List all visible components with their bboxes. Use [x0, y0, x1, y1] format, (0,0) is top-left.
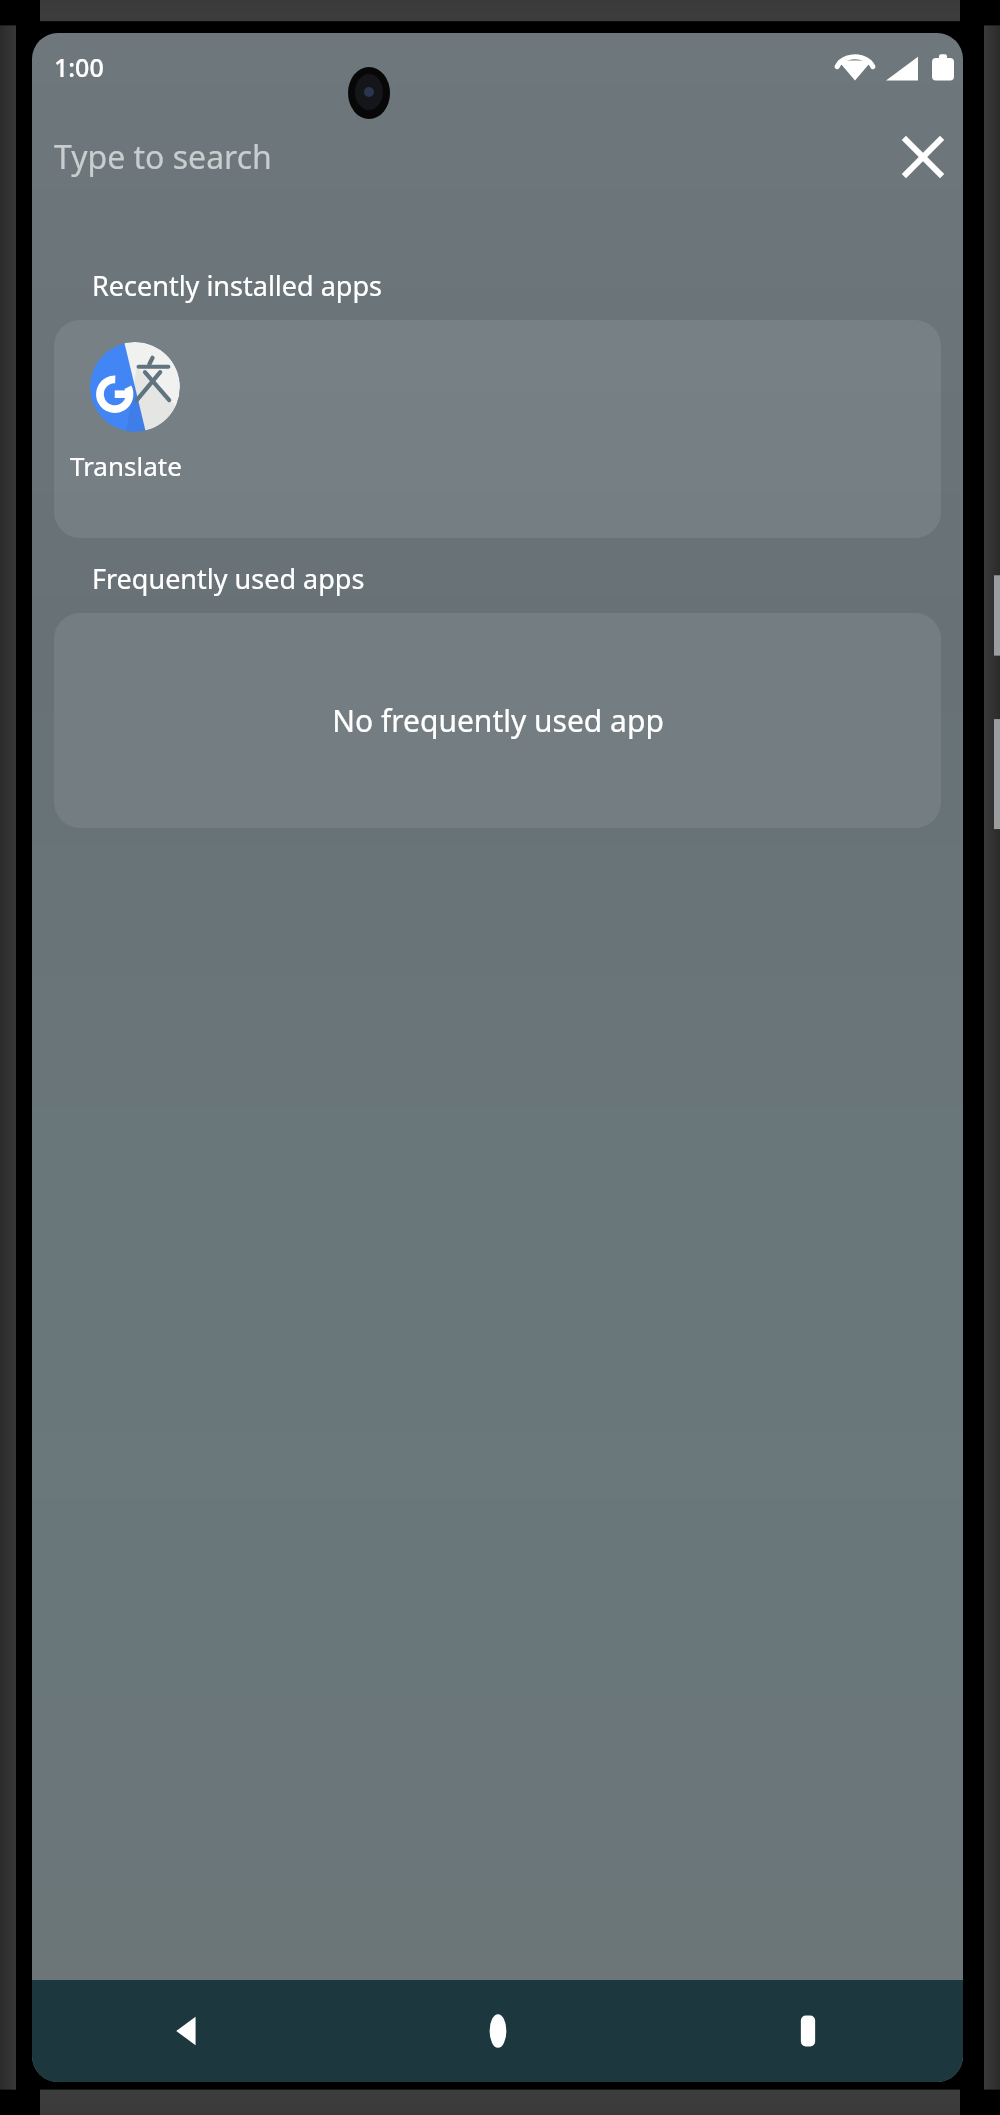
button[interactable]: Translate	[54, 320, 941, 538]
staticText: No frequently used app	[332, 700, 664, 741]
button[interactable]: Type to search	[32, 101, 963, 213]
staticText: 1:00	[54, 50, 104, 84]
button[interactable]: Home	[343, 1980, 653, 2082]
staticText: Translate	[70, 448, 200, 483]
button[interactable]: Recent apps	[653, 1980, 963, 2082]
button[interactable]: No frequently used app	[54, 613, 941, 828]
staticText: Recently installed apps	[92, 267, 382, 304]
button[interactable]: Back	[32, 1980, 343, 2082]
staticText: Frequently used apps	[92, 560, 365, 597]
button[interactable]: Close search	[889, 120, 957, 194]
staticText: Type to search	[54, 135, 889, 179]
